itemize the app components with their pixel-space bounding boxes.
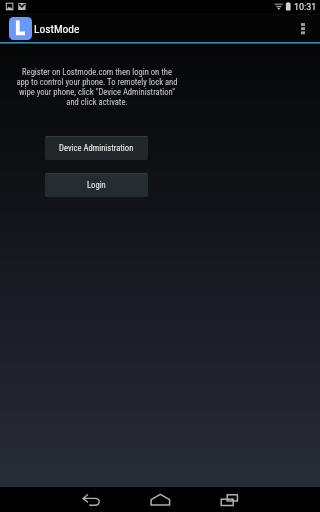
staticText: LostMode [34, 22, 80, 35]
staticText: Device Administration [59, 143, 134, 153]
button[interactable]: More options [286, 15, 320, 42]
button[interactable]: Recent apps [204, 487, 255, 512]
button[interactable]: Home [135, 487, 186, 512]
button[interactable]: Back [66, 487, 117, 512]
button[interactable]: Device Administration [45, 136, 148, 160]
staticText: Login [87, 180, 106, 190]
staticText: Register on Lostmode.com then login on t… [2, 67, 192, 107]
staticText: 10:31 [294, 2, 317, 13]
button[interactable]: Login [45, 173, 148, 197]
